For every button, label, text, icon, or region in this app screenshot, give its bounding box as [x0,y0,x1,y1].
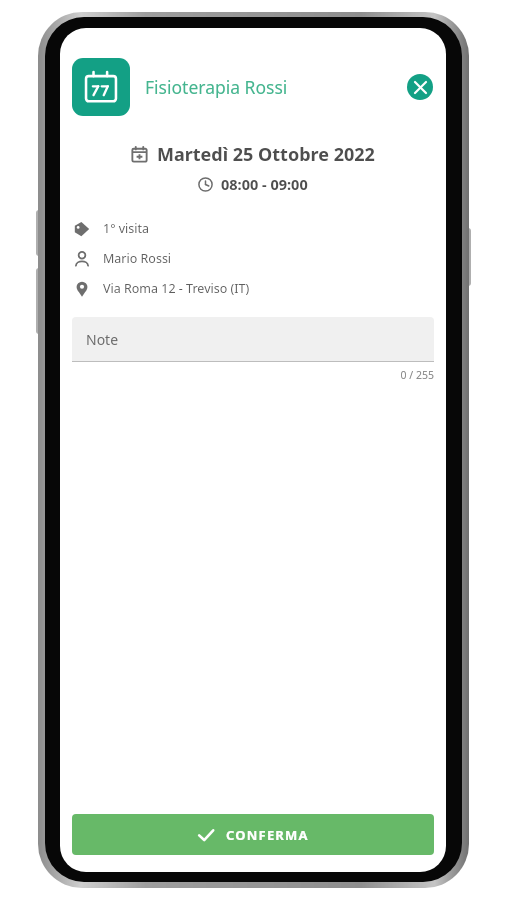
button[interactable]: Via Roma 12 - Treviso (IT) [60,280,446,297]
staticText: 0 / 255 [72,368,434,382]
staticText: Fisioterapia Rossi [145,75,288,99]
staticText: 08:00 - 09:00 [221,174,308,194]
button[interactable]: 1° visita [60,220,446,237]
button[interactable]: Note [72,317,434,361]
staticText: Mario Rossi [103,250,172,267]
staticText: 1° visita [103,220,150,237]
staticText: Martedì 25 Ottobre 2022 [157,142,375,167]
button[interactable]: Calendar app icon [72,58,130,116]
button[interactable]: Close [407,74,433,100]
button[interactable]: CONFERMA [72,814,434,855]
button[interactable]: Mario Rossi [60,250,446,267]
staticText: CONFERMA [226,826,309,844]
staticText: Via Roma 12 - Treviso (IT) [103,280,250,297]
staticText: Note [86,330,119,349]
